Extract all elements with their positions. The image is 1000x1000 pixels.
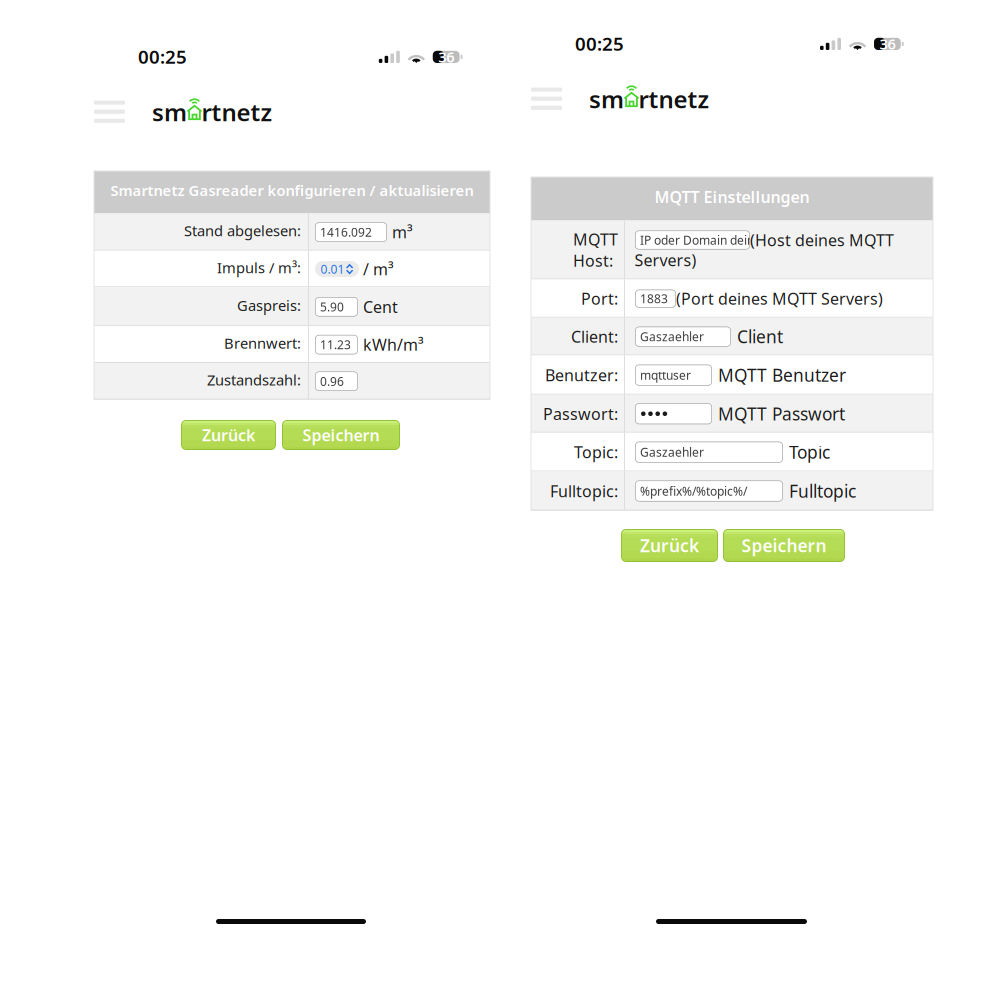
staticText: Fulltopic — [789, 479, 856, 502]
staticText: Speichern — [302, 424, 379, 446]
staticText: MQTT Einstellungen — [654, 186, 809, 207]
staticText: Zurück — [202, 424, 255, 446]
staticText: rtnetz — [638, 83, 709, 115]
staticText: Topic — [789, 441, 830, 464]
button[interactable]: Speichern — [282, 420, 400, 450]
staticText: 11.23 — [320, 337, 351, 353]
staticText: Zurück — [640, 534, 699, 557]
button[interactable]: Zurück — [181, 420, 276, 450]
staticText: Servers) — [634, 249, 696, 271]
staticText: 00:25 — [138, 44, 187, 69]
button[interactable]: Menu — [531, 87, 562, 110]
button[interactable]: smartnetz — [152, 96, 273, 122]
staticText: sm — [589, 83, 624, 115]
staticText: 36 — [879, 34, 895, 54]
staticText: Passwort: — [543, 403, 618, 424]
button[interactable]: Impuls pro Kubikmeter — [315, 261, 359, 277]
staticText: %prefix%/%topic%/ — [640, 483, 747, 499]
staticText: Fulltopic: — [550, 480, 618, 502]
staticText: 0.96 — [320, 373, 344, 389]
staticText: m³ — [392, 221, 413, 243]
staticText: Gaszaehler — [640, 444, 704, 460]
staticText: (Host deines MQTT — [750, 229, 894, 251]
staticText: MQTT Host: — [573, 229, 618, 271]
staticText: Speichern — [741, 534, 826, 557]
staticText: Benutzer: — [545, 364, 618, 386]
staticText: rtnetz — [201, 96, 272, 128]
staticText: MQTT Passwort — [718, 402, 845, 425]
staticText: Client: — [571, 326, 618, 347]
staticText: Smartnetz Gasreader konfigurieren / aktu… — [110, 180, 473, 200]
staticText: Topic: — [574, 441, 618, 463]
button[interactable]: Speichern — [723, 529, 845, 562]
staticText: 00:25 — [575, 31, 624, 56]
staticText: Zustandszahl: — [207, 370, 301, 389]
staticText: Stand abgelesen: — [184, 221, 301, 240]
staticText: Gaspreis: — [237, 295, 301, 315]
staticText: Cent — [363, 296, 398, 317]
staticText: Gaszaehler — [640, 329, 704, 345]
staticText: 1416.092 — [320, 224, 372, 240]
staticText: 0.01 — [320, 261, 344, 277]
staticText: mqttuser — [640, 367, 691, 383]
button[interactable]: smartnetz — [589, 83, 710, 109]
button[interactable]: Zurück — [621, 529, 718, 562]
staticText: Client — [737, 325, 783, 348]
staticText: 1883 — [640, 291, 668, 307]
button[interactable]: Menu — [94, 100, 125, 123]
staticText: MQTT Benutzer — [718, 364, 846, 387]
staticText: Impuls / m³: — [217, 258, 301, 277]
staticText: (Port deines MQTT Servers) — [676, 288, 883, 309]
staticText: sm — [152, 96, 187, 128]
staticText: Port: — [581, 288, 618, 309]
staticText: / m³ — [363, 258, 394, 280]
staticText: IP oder Domain deine — [640, 232, 761, 248]
staticText: 5.90 — [320, 299, 344, 315]
staticText: 36 — [438, 47, 454, 67]
staticText: kWh/m³ — [363, 334, 424, 355]
staticText: Brennwert: — [224, 333, 301, 353]
